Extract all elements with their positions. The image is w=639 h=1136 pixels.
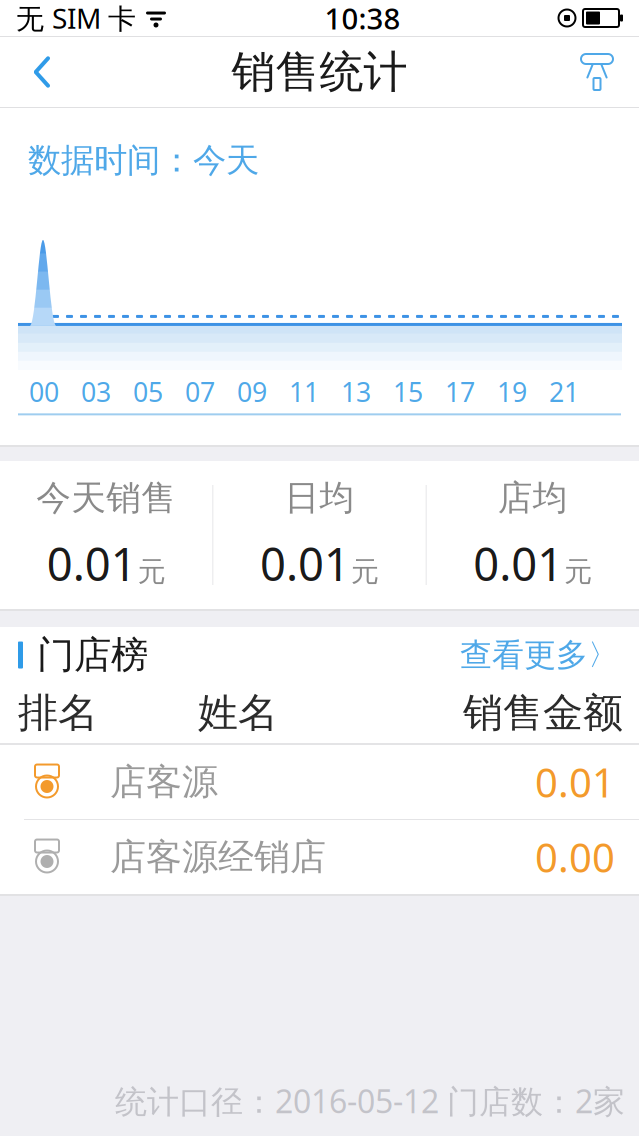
staticText: 07: [185, 374, 215, 409]
staticText: 0.01: [535, 755, 615, 808]
staticText: 查看更多: [460, 635, 588, 675]
staticText: 00: [29, 374, 59, 409]
staticText: 0.01: [47, 533, 137, 593]
staticText: 店客源经销店: [110, 835, 326, 879]
staticText: 17: [445, 374, 475, 409]
button[interactable]: 筛选: [569, 44, 625, 100]
button[interactable]: 查看更多: [448, 627, 617, 683]
staticText: 0.01: [473, 533, 563, 593]
button[interactable]: 返回: [14, 44, 70, 100]
staticText: 店客源: [110, 760, 218, 804]
staticText: 元: [564, 554, 592, 589]
staticText: 〉: [588, 637, 617, 673]
staticText: 姓名: [198, 688, 278, 737]
staticText: 10:38: [324, 0, 400, 37]
staticText: 0.01: [260, 533, 350, 593]
staticText: 销售金额: [463, 688, 623, 737]
staticText: 数据时间：今天: [28, 140, 259, 181]
staticText: 13: [341, 374, 371, 409]
staticText: 09: [237, 374, 267, 409]
staticText: 元: [138, 554, 166, 589]
staticText: 销售统计: [231, 45, 407, 99]
staticText: 15: [393, 374, 423, 409]
staticText: 19: [497, 374, 527, 409]
staticText: 门店榜: [37, 632, 148, 678]
staticText: 排名: [18, 688, 98, 737]
staticText: 日均: [284, 477, 354, 519]
staticText: 店均: [498, 477, 568, 519]
staticText: 03: [81, 374, 111, 409]
staticText: 05: [133, 374, 163, 409]
staticText: 今天销售: [36, 477, 176, 519]
staticText: 元: [351, 554, 379, 589]
staticText: 21: [549, 374, 579, 409]
staticText: 0.00: [535, 830, 615, 883]
staticText: 11: [289, 374, 319, 409]
staticText: 无 SIM 卡: [16, 0, 136, 37]
button[interactable]: 店客源经销店: [0, 820, 639, 894]
button[interactable]: 店客源: [0, 745, 639, 820]
staticText: 统计口径：2016-05-12 门店数：2家: [115, 1079, 625, 1122]
